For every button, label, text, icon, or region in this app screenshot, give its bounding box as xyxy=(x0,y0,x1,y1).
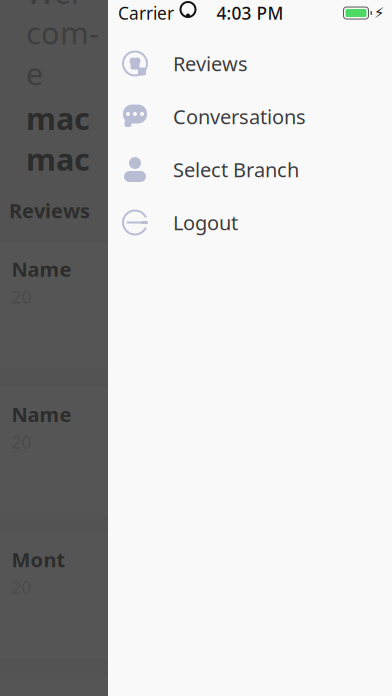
staticText: Logout xyxy=(173,209,238,236)
staticText: mac mac xyxy=(26,98,90,179)
button[interactable]: Close menu xyxy=(0,0,108,696)
staticText: Name xyxy=(11,401,71,428)
button[interactable]: Select Branch xyxy=(108,143,392,196)
staticText: Conversations xyxy=(173,103,306,130)
staticText: 20 xyxy=(11,285,31,308)
staticText: ⚡︎ xyxy=(374,5,384,21)
staticText: 20 xyxy=(11,576,31,599)
staticText: Welcome xyxy=(26,0,99,94)
staticText: Reviews xyxy=(9,197,90,224)
staticText: Mont xyxy=(11,546,65,573)
button[interactable]: Reviews xyxy=(108,37,392,90)
staticText: 4:03 PM xyxy=(216,1,283,24)
staticText: Reviews xyxy=(173,50,248,77)
staticText: Name xyxy=(11,256,71,282)
staticText: 20 xyxy=(11,430,31,453)
button[interactable]: Logout xyxy=(108,196,392,249)
staticText: Carrier xyxy=(118,1,174,24)
button[interactable]: Conversations xyxy=(108,90,392,143)
staticText: Select Branch xyxy=(173,156,299,183)
